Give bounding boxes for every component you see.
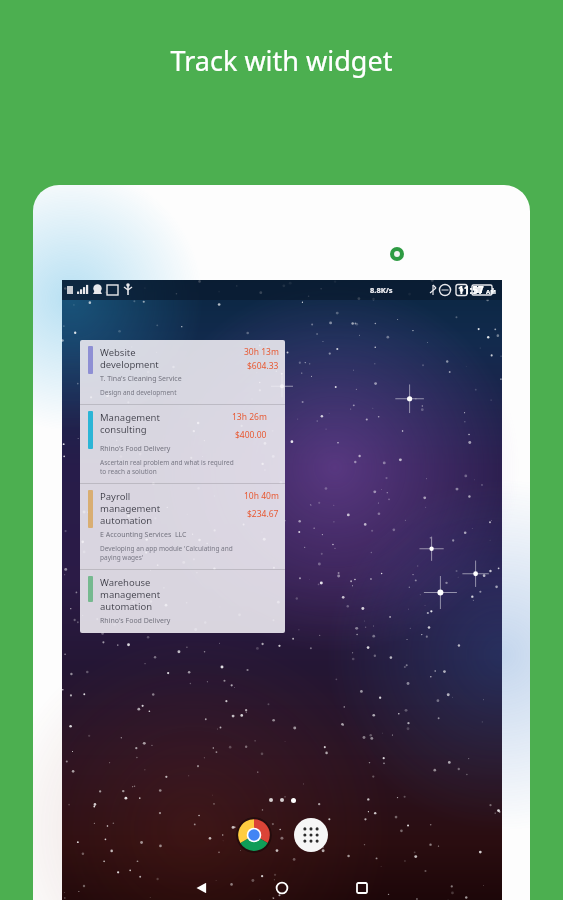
staticText: 11:57 (458, 283, 484, 297)
staticText: Developing an app module 'Calculating an… (100, 544, 233, 562)
button[interactable]: Recent apps (339, 875, 385, 900)
button[interactable]: Warehouse management automation (80, 570, 285, 633)
staticText: Rhino's Food Delivery (100, 444, 171, 454)
staticText: Payroll management automation (100, 490, 172, 527)
staticText: Track with widget (0, 42, 563, 79)
staticText: E Accounting Services LLC (100, 530, 187, 540)
staticText: T. Tina's Cleaning Service (100, 374, 182, 384)
button[interactable]: Chrome (236, 817, 272, 853)
button[interactable]: Home (259, 875, 305, 900)
button[interactable]: Website development (80, 340, 285, 404)
staticText: AM (486, 288, 496, 296)
button[interactable]: All apps (294, 818, 328, 852)
button[interactable]: Payroll management automation (80, 484, 285, 569)
staticText: 30h 13m (244, 346, 279, 358)
staticText: Website development (100, 346, 172, 371)
staticText: Rhino's Food Delivery (100, 616, 171, 626)
staticText: $400.00 (235, 429, 267, 441)
staticText: $604.33 (247, 360, 279, 372)
staticText: Design and development (100, 388, 177, 397)
staticText: 8.8K/s (370, 285, 393, 295)
staticText: $234.67 (247, 508, 279, 520)
button[interactable]: Website development (80, 340, 285, 633)
staticText: 10h 40m (244, 490, 279, 502)
staticText: 13h 26m (232, 411, 267, 423)
staticText: Management consulting (100, 411, 160, 436)
button[interactable]: Back (179, 875, 225, 900)
staticText: Ascertain real problem and what is requi… (100, 458, 234, 476)
button[interactable]: Management consulting (80, 405, 285, 483)
staticText: Warehouse management automation (100, 576, 189, 613)
